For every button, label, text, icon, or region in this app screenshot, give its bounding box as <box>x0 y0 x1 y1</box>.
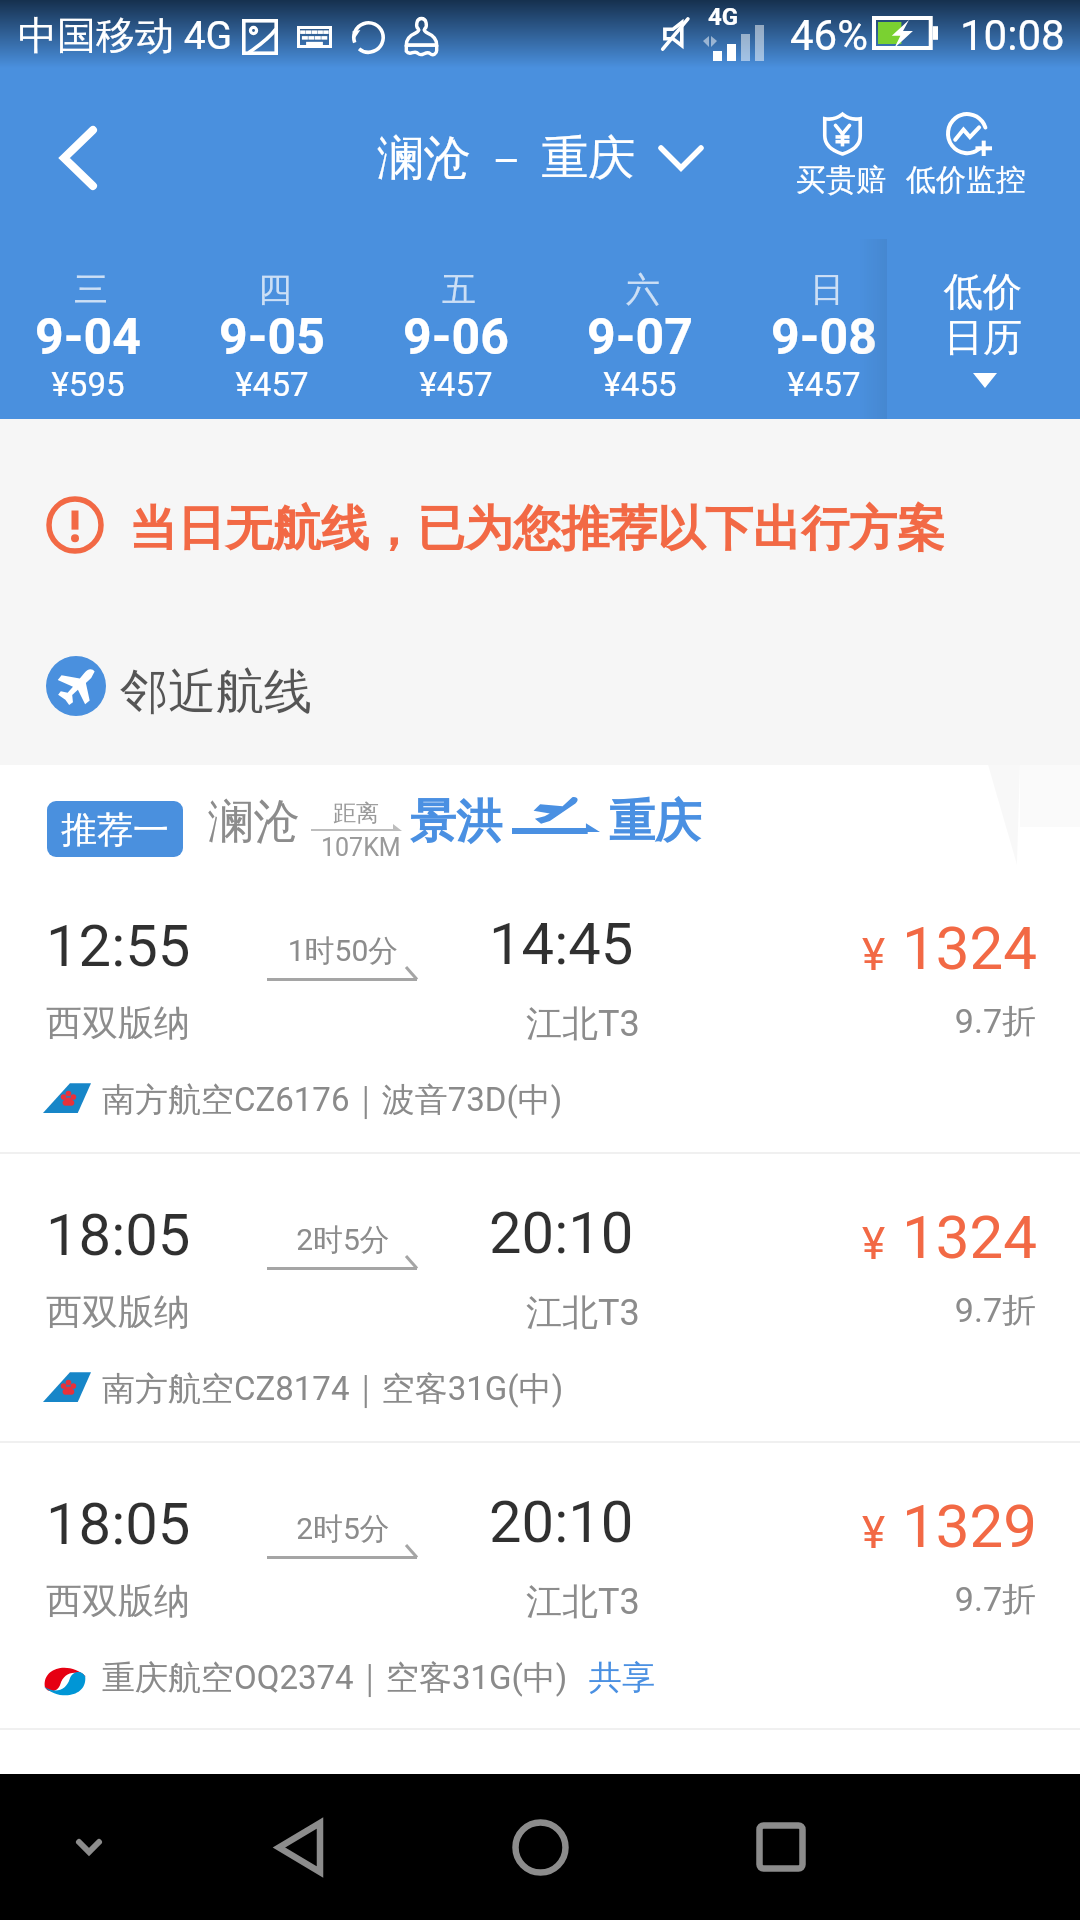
staticText: 1329 <box>237 1491 1037 1561</box>
staticText: 9-07 <box>240 308 1040 367</box>
staticText: 三 <box>0 268 491 311</box>
staticText: 9-08 <box>424 308 1080 367</box>
staticText: 20:10 <box>489 1488 634 1556</box>
staticText: 20:10 <box>489 1199 634 1267</box>
button[interactable]: 买贵赔 <box>786 100 894 204</box>
staticText: 18:05 <box>46 1490 191 1558</box>
staticText: 四 <box>0 268 675 311</box>
staticText: 当日无航线，已为您推荐以下出行方案 <box>129 499 945 559</box>
button[interactable] <box>0 872 1080 1159</box>
staticText: 9.7折 <box>236 1289 1036 1332</box>
staticText: 低价 <box>583 267 1080 316</box>
staticText: ¥595 <box>0 365 488 404</box>
button[interactable]: Back <box>190 1774 420 1920</box>
staticText: 西双版纳 <box>46 1000 190 1045</box>
staticText: 澜沧 － 重庆 <box>377 129 636 188</box>
staticText: 107KM <box>321 833 401 862</box>
staticText: ¥ <box>862 1507 886 1559</box>
staticText: 9.7折 <box>236 1000 1036 1043</box>
staticText: 西双版纳 <box>46 1289 190 1334</box>
staticText: 西双版纳 <box>46 1578 190 1623</box>
staticText: 12:55 <box>46 912 191 980</box>
button[interactable]: 推荐一 <box>47 801 183 857</box>
staticText: 六 <box>243 268 1043 311</box>
staticText: 五 <box>59 268 859 311</box>
staticText: 江北T3 <box>526 1001 640 1046</box>
staticText: 2时5分 <box>0 1221 743 1259</box>
button[interactable]: Hide keyboard <box>0 1774 190 1920</box>
staticText: 共享 <box>589 1657 655 1699</box>
staticText: 日历 <box>583 313 1080 362</box>
staticText: ¥457 <box>56 365 856 404</box>
staticText: 14:45 <box>489 910 634 978</box>
staticText: 9-04 <box>0 308 488 367</box>
button[interactable] <box>548 226 732 419</box>
staticText: 9-05 <box>0 308 672 367</box>
button[interactable] <box>0 226 180 419</box>
staticText: 46% <box>790 11 868 60</box>
staticText: 4G <box>708 3 739 31</box>
staticText: 18:05 <box>46 1201 191 1269</box>
button[interactable]: 澜沧 － 重庆 <box>358 112 708 198</box>
staticText: ¥455 <box>240 365 1040 404</box>
staticText: 重庆 <box>609 793 701 851</box>
staticText: ¥457 <box>0 365 672 404</box>
staticText: 9.7折 <box>236 1578 1036 1621</box>
staticText: 1324 <box>237 913 1037 983</box>
staticText: 日 <box>427 268 1080 311</box>
staticText: 中国移动 4G <box>18 11 233 60</box>
staticText: 重庆航空OQ2374｜空客31G(中) <box>102 1657 568 1699</box>
staticText: 江北T3 <box>526 1579 640 1624</box>
button[interactable]: Recent apps <box>660 1774 902 1920</box>
staticText: ¥ <box>862 1218 886 1270</box>
staticText: 10:08 <box>960 11 1065 60</box>
button[interactable] <box>0 1450 1080 1737</box>
staticText: 澜沧 <box>208 793 300 851</box>
staticText: 江北T3 <box>526 1290 640 1335</box>
staticText: 南方航空CZ6176｜波音73D(中) <box>102 1079 563 1121</box>
staticText: 2时5分 <box>0 1510 743 1548</box>
staticText: 买贵赔 <box>796 161 886 199</box>
staticText: ¥ <box>862 929 886 981</box>
staticText: 景洪 <box>410 793 502 851</box>
button[interactable] <box>0 1161 1080 1448</box>
button[interactable] <box>732 226 916 419</box>
staticText: 1324 <box>237 1202 1037 1272</box>
staticText: 9-06 <box>56 308 856 367</box>
staticText: 推荐一 <box>61 807 169 852</box>
button[interactable]: Home <box>420 1774 660 1920</box>
staticText: 邻近航线 <box>120 662 312 722</box>
button[interactable] <box>887 226 1080 419</box>
staticText: 南方航空CZ8174｜空客31G(中) <box>102 1368 564 1410</box>
button[interactable] <box>364 226 548 419</box>
staticText: 距离 <box>333 799 379 828</box>
button[interactable]: Back <box>12 87 144 229</box>
staticText: 1时50分 <box>0 932 743 970</box>
button[interactable] <box>180 226 364 419</box>
staticText: 低价监控 <box>906 161 1026 199</box>
button[interactable]: 低价监控 <box>898 100 1034 204</box>
staticText: ¥457 <box>424 365 1080 404</box>
